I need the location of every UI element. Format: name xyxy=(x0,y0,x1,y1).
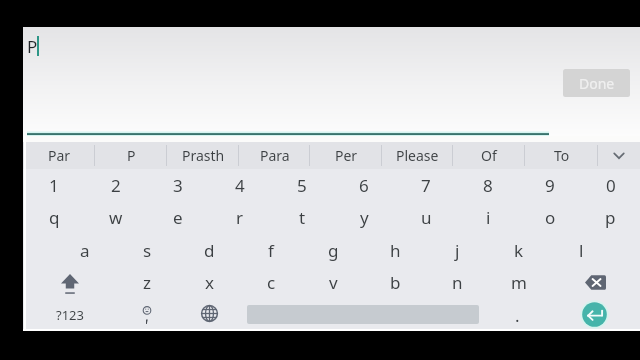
button[interactable]: More suggestions xyxy=(598,142,640,169)
button[interactable]: 8 xyxy=(457,169,519,201)
staticText: Done xyxy=(579,74,615,93)
button[interactable]: Please xyxy=(382,142,453,169)
button[interactable]: 1 xyxy=(23,169,85,201)
staticText: r xyxy=(236,206,244,229)
staticText: 9 xyxy=(545,174,555,197)
button[interactable]: ?123 xyxy=(23,299,116,331)
button[interactable]: Enter xyxy=(548,299,640,331)
staticText: P xyxy=(27,35,38,58)
staticText: p xyxy=(605,206,616,229)
button[interactable]: g xyxy=(302,234,364,266)
button[interactable]: Per xyxy=(310,142,382,169)
staticText: a xyxy=(80,239,90,262)
button[interactable]: Para xyxy=(239,142,310,169)
button[interactable]: Done xyxy=(563,69,630,97)
staticText: o xyxy=(545,206,556,229)
staticText: 5 xyxy=(297,174,307,197)
staticText: P xyxy=(127,146,136,165)
staticText: 7 xyxy=(421,174,431,197)
button[interactable]: 9 xyxy=(519,169,581,201)
button[interactable]: To xyxy=(525,142,598,169)
button[interactable]: Shift xyxy=(23,266,116,298)
staticText: Par xyxy=(48,146,71,165)
staticText: q xyxy=(49,206,60,229)
staticText: ?123 xyxy=(56,306,84,324)
staticText: Please xyxy=(396,146,439,165)
button[interactable]: z xyxy=(116,266,178,298)
staticText: b xyxy=(390,271,401,294)
button[interactable]: 2 xyxy=(85,169,147,201)
button[interactable]: b xyxy=(364,266,426,298)
button[interactable]: 3 xyxy=(147,169,209,201)
button[interactable]: l xyxy=(550,234,612,266)
button[interactable]: m xyxy=(488,266,550,298)
button[interactable]: 5 xyxy=(271,169,333,201)
staticText: e xyxy=(173,206,183,229)
staticText: . xyxy=(515,304,520,327)
staticText: w xyxy=(109,206,123,229)
button[interactable]: f xyxy=(240,234,302,266)
button[interactable]: x xyxy=(178,266,240,298)
button[interactable]: y xyxy=(333,201,395,233)
staticText: z xyxy=(143,271,151,294)
button[interactable]: n xyxy=(426,266,488,298)
button[interactable]: h xyxy=(364,234,426,266)
staticText: s xyxy=(143,239,152,262)
button[interactable]: p xyxy=(581,201,640,233)
staticText: l xyxy=(579,239,584,262)
button[interactable]: . xyxy=(486,299,548,331)
staticText: 2 xyxy=(111,174,121,197)
button[interactable]: r xyxy=(209,201,271,233)
staticText: n xyxy=(452,271,463,294)
button[interactable]: Space xyxy=(240,299,486,331)
button[interactable]: 0 xyxy=(581,169,640,201)
staticText: x xyxy=(205,271,214,294)
staticText: f xyxy=(268,239,274,262)
button[interactable]: Of xyxy=(453,142,525,169)
staticText: k xyxy=(514,239,524,262)
staticText: u xyxy=(421,206,432,229)
staticText: m xyxy=(511,271,527,294)
staticText: Prasth xyxy=(182,146,225,165)
button[interactable]: Emoji xyxy=(116,299,178,331)
button[interactable]: Par xyxy=(23,142,95,169)
button[interactable]: k xyxy=(488,234,550,266)
button[interactable]: a xyxy=(54,234,116,266)
button[interactable]: 6 xyxy=(333,169,395,201)
button[interactable]: s xyxy=(116,234,178,266)
button[interactable]: 7 xyxy=(395,169,457,201)
staticText: 3 xyxy=(173,174,183,197)
button[interactable]: Change language xyxy=(178,299,240,331)
staticText: 4 xyxy=(235,174,245,197)
button[interactable]: u xyxy=(395,201,457,233)
staticText: 1 xyxy=(49,174,59,197)
button[interactable]: d xyxy=(178,234,240,266)
button[interactable]: o xyxy=(519,201,581,233)
staticText: g xyxy=(328,239,339,262)
staticText: c xyxy=(267,271,276,294)
staticText: d xyxy=(204,239,215,262)
staticText: 6 xyxy=(359,174,369,197)
staticText: Of xyxy=(481,146,497,165)
button[interactable]: t xyxy=(271,201,333,233)
button[interactable]: 4 xyxy=(209,169,271,201)
staticText: y xyxy=(360,206,369,229)
button[interactable]: i xyxy=(457,201,519,233)
staticText: To xyxy=(554,146,570,165)
staticText: h xyxy=(390,239,401,262)
button[interactable]: j xyxy=(426,234,488,266)
staticText: j xyxy=(455,239,460,262)
button[interactable]: e xyxy=(147,201,209,233)
button[interactable]: q xyxy=(23,201,85,233)
button[interactable]: Backspace xyxy=(550,266,640,298)
staticText: 8 xyxy=(483,174,493,197)
button[interactable]: Prasth xyxy=(167,142,239,169)
button[interactable]: c xyxy=(240,266,302,298)
button[interactable]: w xyxy=(85,201,147,233)
staticText: Para xyxy=(260,146,290,165)
button[interactable]: P xyxy=(95,142,167,169)
staticText: Per xyxy=(335,146,358,165)
button[interactable]: v xyxy=(302,266,364,298)
staticText: t xyxy=(299,206,306,229)
staticText: 0 xyxy=(606,174,616,197)
